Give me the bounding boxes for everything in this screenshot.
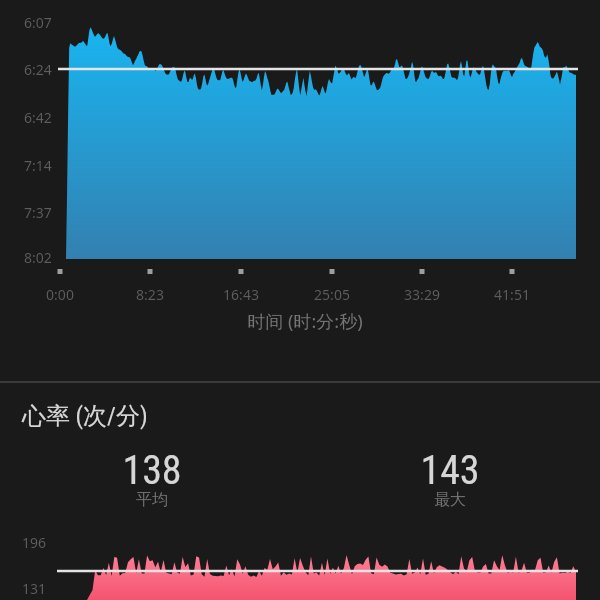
staticText: 心率 (次/分) (22, 401, 148, 431)
staticText: 41:51 (432, 285, 592, 304)
staticText: 时间 (时:分:秒) (225, 309, 385, 334)
staticText: 最大 (434, 490, 466, 510)
staticText: 16:43 (161, 285, 321, 304)
staticText: 25:05 (252, 285, 412, 304)
staticText: 6:07 (24, 13, 52, 32)
staticText: 平均 (136, 490, 168, 510)
staticText: 8:02 (24, 248, 52, 267)
staticText: 8:23 (70, 285, 230, 304)
staticText: 131 (22, 579, 47, 598)
staticText: 6:42 (24, 108, 52, 127)
staticText: 196 (22, 533, 47, 552)
staticText: 143 (420, 447, 480, 494)
staticText: 138 (122, 447, 182, 494)
staticText: 0:00 (0, 285, 140, 304)
staticText: 7:14 (24, 156, 52, 175)
staticText: 6:24 (24, 60, 52, 79)
staticText: 7:37 (24, 203, 52, 222)
staticText: 33:29 (342, 285, 502, 304)
